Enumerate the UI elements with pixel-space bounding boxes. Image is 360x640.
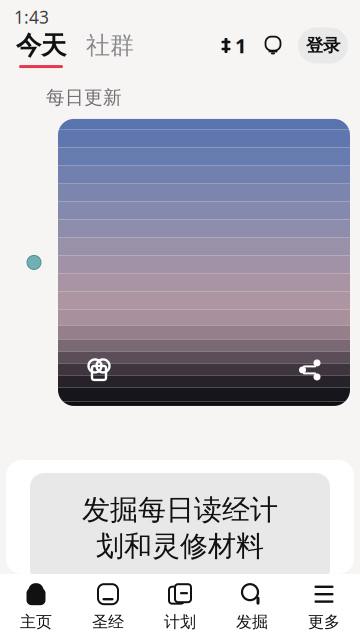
staticText: 划和灵修材料 xyxy=(96,529,264,563)
staticText: 计划 xyxy=(164,612,196,632)
staticText: 社群 xyxy=(86,31,134,60)
staticText: 今天 xyxy=(16,30,66,61)
staticText: 发掘 xyxy=(236,612,268,632)
button[interactable]: 主页 xyxy=(0,576,72,638)
button[interactable]: 登录 xyxy=(282,27,348,70)
staticText: 更多 xyxy=(308,612,340,632)
button[interactable]: 每日更新卡片 xyxy=(58,119,350,406)
staticText: 圣经 xyxy=(92,612,124,632)
staticText: 发掘每日读经计 xyxy=(82,493,278,527)
staticText: 1:43 xyxy=(14,5,49,28)
staticText: 登录 xyxy=(306,35,340,56)
button[interactable]: 圣经 xyxy=(72,576,144,638)
staticText: 1 xyxy=(235,32,246,59)
button[interactable]: 发掘 xyxy=(216,576,288,638)
button[interactable]: 计划 xyxy=(144,576,216,638)
button[interactable]: 今天 xyxy=(12,30,70,68)
button[interactable]: 社群 xyxy=(70,31,134,67)
staticText: 每日更新 xyxy=(46,86,122,109)
button[interactable]: 更多 xyxy=(288,576,360,638)
button[interactable]: 发掘每日读经计 xyxy=(30,473,330,583)
staticText: 主页 xyxy=(20,612,52,632)
button[interactable]: 通知 xyxy=(246,36,282,62)
button[interactable]: 连续天数 xyxy=(219,32,246,66)
